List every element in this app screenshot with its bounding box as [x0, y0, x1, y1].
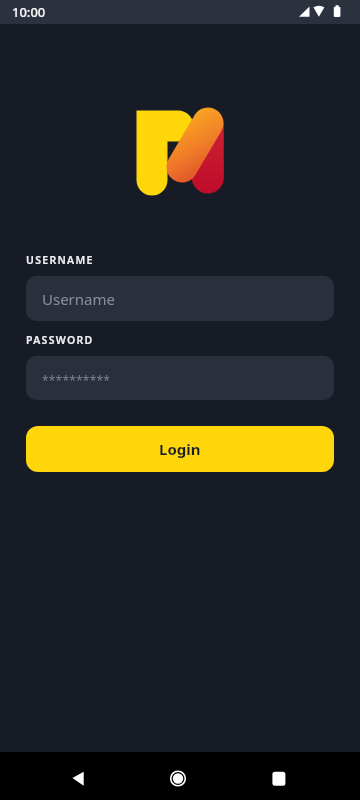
staticText: PASSWORD	[26, 333, 94, 347]
staticText: Username	[42, 289, 115, 309]
button[interactable]: Username	[26, 276, 334, 321]
button[interactable]	[62, 763, 94, 789]
staticText: USERNAME	[26, 253, 94, 267]
button[interactable]	[263, 763, 295, 789]
button[interactable]	[162, 763, 194, 789]
button[interactable]: Login	[26, 426, 334, 472]
staticText: Login	[159, 439, 201, 459]
button[interactable]: **********	[26, 356, 334, 400]
staticText: **********	[42, 372, 111, 388]
staticText: 10:00	[12, 3, 46, 21]
